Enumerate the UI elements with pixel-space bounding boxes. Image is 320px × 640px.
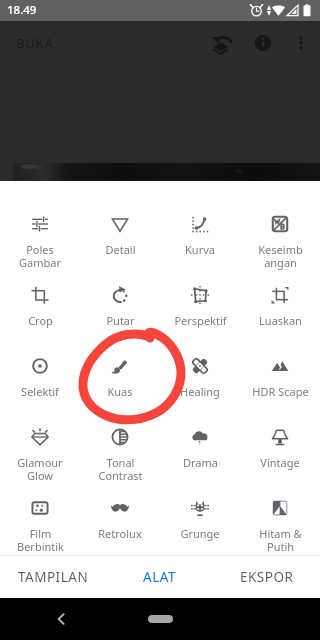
button[interactable]: Tonal Contrast	[80, 417, 160, 488]
staticText: Kuas	[107, 384, 133, 399]
button[interactable]: Glamour Glow	[0, 417, 80, 488]
staticText: 18.49	[7, 2, 37, 18]
staticText: Film Berbintik	[17, 526, 64, 554]
button[interactable]: Grunge	[160, 488, 240, 555]
staticText: Drama	[183, 455, 218, 470]
button[interactable]: Vintage	[240, 417, 320, 488]
button[interactable]: Kuas	[80, 346, 160, 417]
button[interactable]: Kurva	[160, 204, 240, 275]
staticText: Keseimb angan	[258, 242, 303, 270]
staticText: Perspektif	[174, 313, 227, 328]
button[interactable]: Back	[44, 602, 78, 636]
staticText: Putar	[106, 313, 135, 328]
staticText: HDR Scape	[252, 384, 309, 399]
staticText: Selektif	[21, 384, 59, 399]
staticText: Grunge	[180, 526, 220, 541]
staticText: ALAT	[143, 568, 176, 586]
button[interactable]: Perspektif	[160, 275, 240, 346]
button[interactable]: Putar	[80, 275, 160, 346]
button[interactable]: Luaskan	[240, 275, 320, 346]
staticText: Hitam & Putih	[259, 526, 302, 554]
button[interactable]: Undo	[202, 24, 240, 62]
staticText: Detail	[105, 242, 136, 257]
staticText: Tonal Contrast	[98, 455, 143, 483]
button[interactable]: Info	[244, 24, 282, 62]
staticText: EKSPOR	[240, 568, 294, 586]
staticText: Luaskan	[259, 313, 302, 328]
button[interactable]: TAMPILAN	[0, 556, 106, 598]
staticText: Crop	[28, 313, 53, 328]
staticText: Healing	[180, 384, 220, 399]
staticText: Retrolux	[98, 526, 142, 541]
button[interactable]: Poles Gambar	[0, 204, 80, 275]
button[interactable]: ALAT	[106, 556, 213, 598]
button[interactable]: EKSPOR	[213, 556, 320, 598]
staticText: Kurva	[185, 242, 215, 257]
button[interactable]: Detail	[80, 204, 160, 275]
button[interactable]: Hitam & Putih	[240, 488, 320, 555]
staticText: TAMPILAN	[18, 568, 89, 586]
button[interactable]: Selektif	[0, 346, 80, 417]
staticText: BUKA	[16, 34, 54, 52]
button[interactable]: Home	[148, 615, 173, 623]
button[interactable]: Keseimb angan	[240, 204, 320, 275]
button[interactable]: Drama	[160, 417, 240, 488]
button[interactable]: HDR Scape	[240, 346, 320, 417]
staticText: Poles Gambar	[19, 242, 61, 270]
button[interactable]: Crop	[0, 275, 80, 346]
staticText: Glamour Glow	[17, 455, 63, 483]
staticText: Vintage	[260, 455, 300, 470]
button[interactable]: Healing	[160, 346, 240, 417]
button[interactable]: Retrolux	[80, 488, 160, 555]
button[interactable]: Film Berbintik	[0, 488, 80, 555]
